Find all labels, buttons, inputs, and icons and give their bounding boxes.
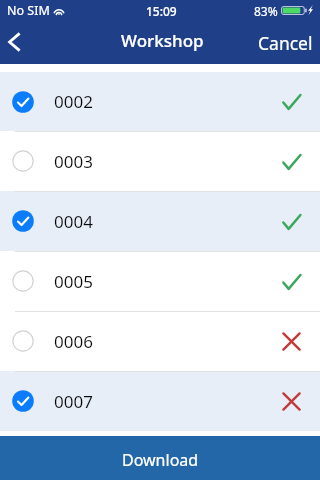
staticText: 0007 <box>54 390 93 413</box>
staticText: Workshop <box>121 29 204 52</box>
staticText: No SIM <box>7 2 50 19</box>
staticText: 15:09 <box>146 3 177 19</box>
button[interactable]: Download <box>0 436 320 480</box>
staticText: 0005 <box>54 270 93 293</box>
button[interactable]: 0003 <box>0 131 320 191</box>
staticText: Cancel <box>258 31 313 55</box>
staticText: 0004 <box>54 210 93 233</box>
staticText: Download <box>122 449 199 471</box>
button[interactable]: 0005 <box>0 251 320 311</box>
staticText: 83% <box>254 3 278 19</box>
button[interactable]: 0004 <box>0 191 320 251</box>
staticText: 0003 <box>54 150 93 173</box>
button[interactable]: 0006 <box>0 311 320 371</box>
button[interactable]: 0007 <box>0 371 320 431</box>
button[interactable]: Back <box>0 24 36 64</box>
button[interactable]: Cancel <box>250 24 320 64</box>
staticText: 0006 <box>54 330 93 353</box>
staticText: 0002 <box>54 90 93 113</box>
button[interactable]: 0002 <box>0 72 320 131</box>
